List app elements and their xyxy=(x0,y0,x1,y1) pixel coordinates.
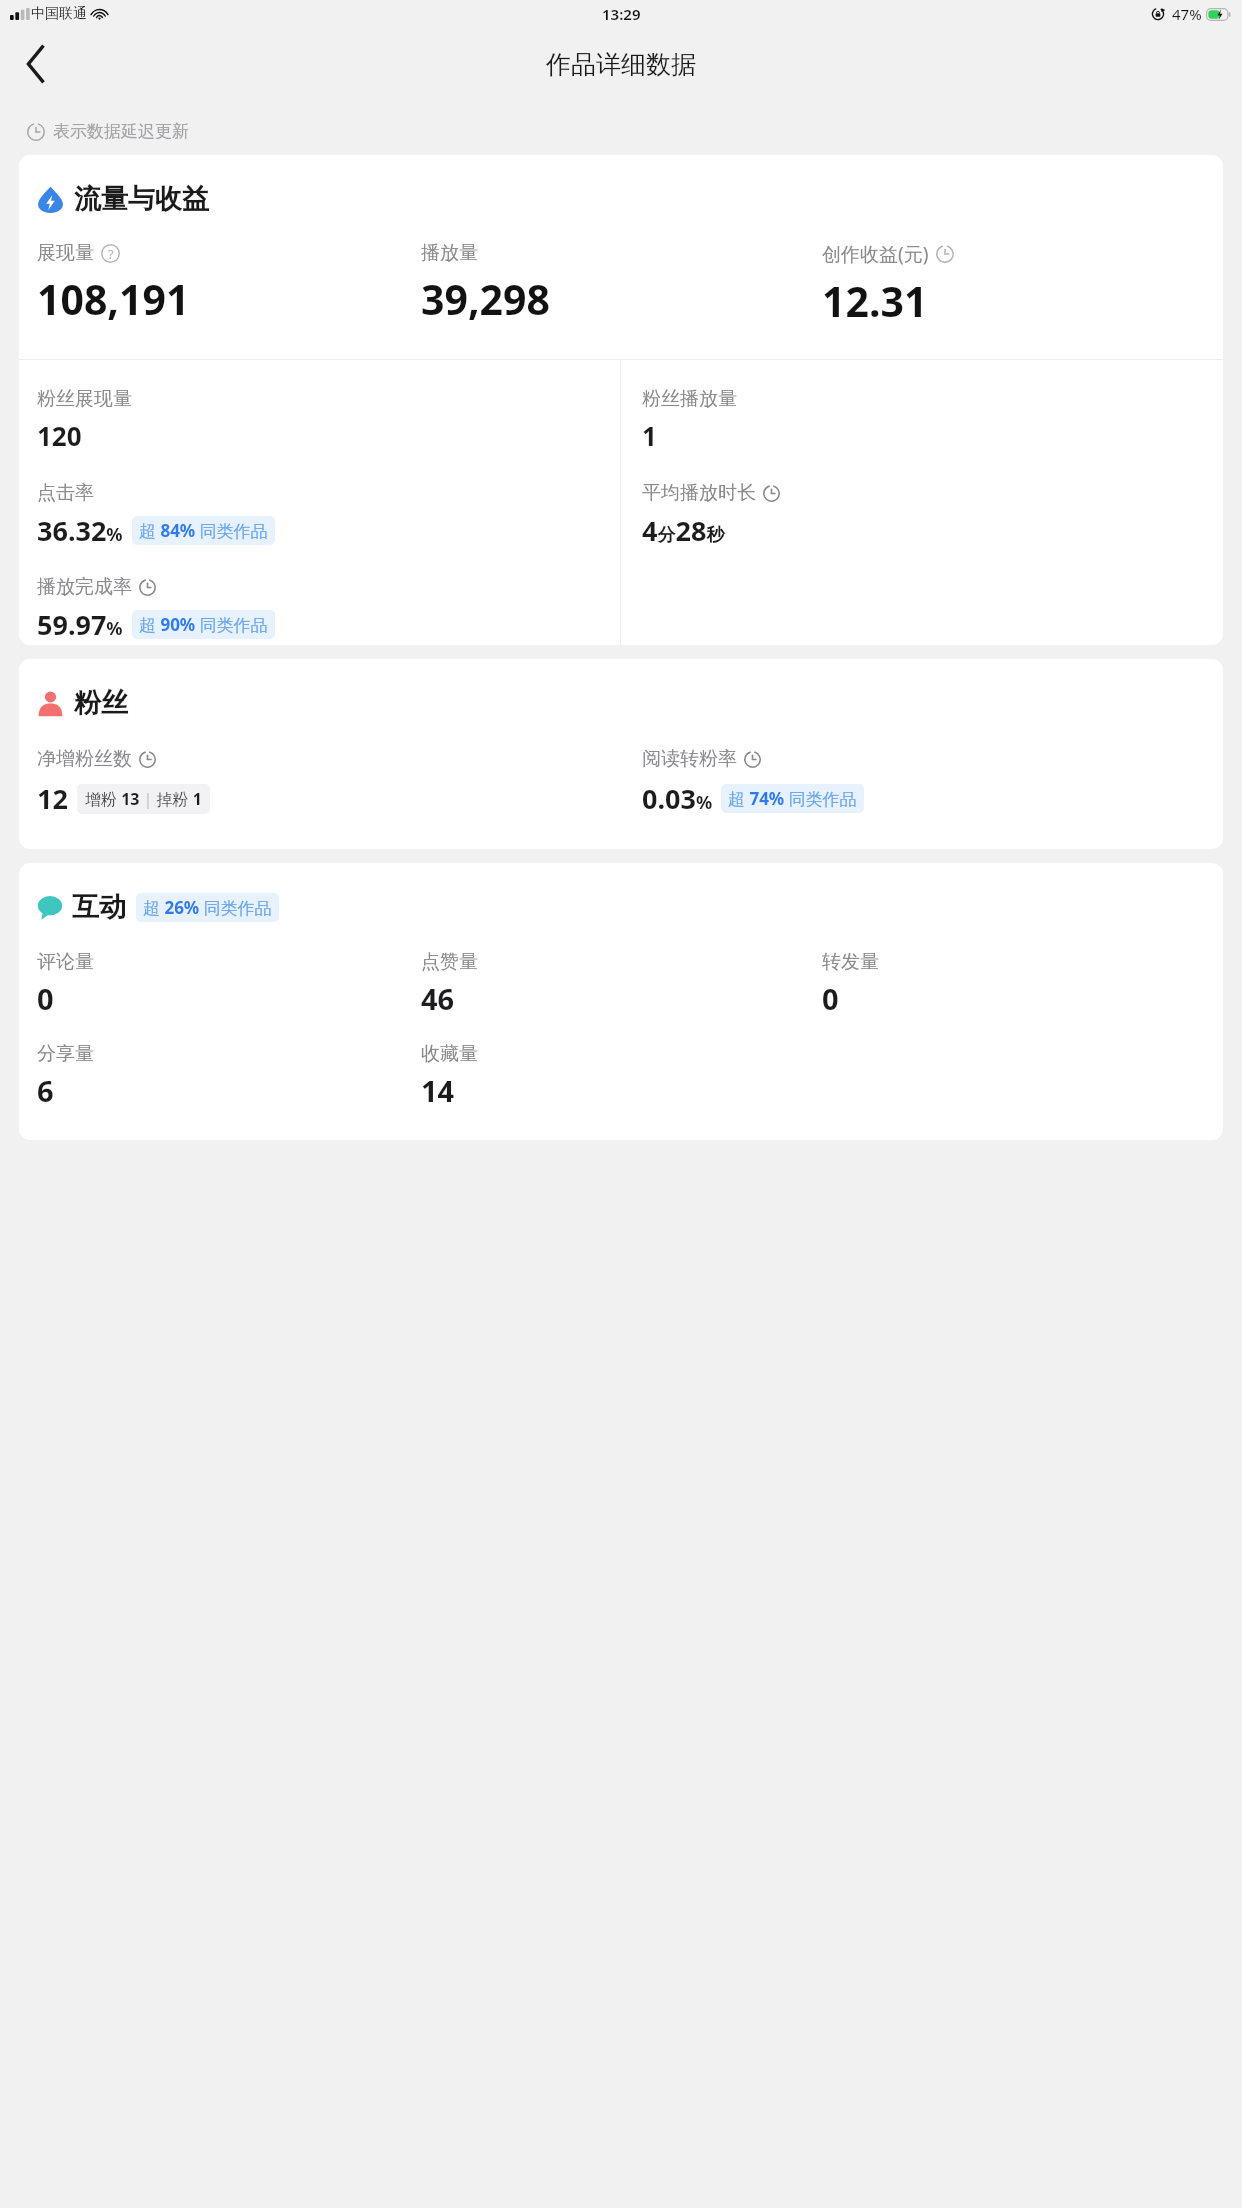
staticText: 120 xyxy=(37,418,82,453)
staticText: 47% xyxy=(1172,4,1202,24)
staticText: 点击率 xyxy=(37,481,94,505)
staticText: 创作收益(元) xyxy=(822,241,929,267)
staticText: ? xyxy=(108,245,114,263)
staticText: 中国联通 xyxy=(31,5,87,23)
staticText: 0 xyxy=(822,979,839,1018)
staticText: 展现量 xyxy=(37,241,94,265)
staticText: 6 xyxy=(37,1071,54,1110)
staticText: 14 xyxy=(421,1071,455,1110)
staticText: 46 xyxy=(421,979,455,1018)
staticText: 超 26% 同类作品 xyxy=(143,896,272,919)
button[interactable]: 流量与收益 xyxy=(19,155,1223,645)
staticText: 表示数据延迟更新 xyxy=(53,121,189,142)
staticText: 互动 xyxy=(72,890,126,924)
button[interactable]: 互动 xyxy=(19,863,1223,1140)
staticText: 评论量 xyxy=(37,950,94,974)
staticText: 播放完成率 xyxy=(37,575,132,599)
staticText: 粉丝播放量 xyxy=(642,387,737,411)
staticText: 收藏量 xyxy=(421,1042,478,1066)
staticText: 39,298 xyxy=(421,271,550,327)
staticText: 点赞量 xyxy=(421,950,478,974)
staticText: 阅读转粉率 xyxy=(642,747,737,771)
staticText: 0.03% xyxy=(642,780,713,817)
staticText: 0 xyxy=(37,979,54,1018)
staticText: 4分28秒 xyxy=(642,512,725,549)
staticText: 超 90% 同类作品 xyxy=(139,613,268,636)
staticText: 粉丝展现量 xyxy=(37,387,132,411)
staticText: 增粉 13 | 掉粉 1 xyxy=(85,788,202,810)
staticText: 12.31 xyxy=(822,273,928,329)
staticText: 净增粉丝数 xyxy=(37,747,132,771)
staticText: 108,191 xyxy=(37,271,190,327)
staticText: 平均播放时长 xyxy=(642,481,756,505)
staticText: 13:29 xyxy=(602,4,641,24)
button[interactable]: Back xyxy=(8,36,64,92)
staticText: 1 xyxy=(642,418,657,453)
staticText: 粉丝 xyxy=(74,686,128,720)
button[interactable]: 粉丝 xyxy=(19,659,1223,849)
staticText: 超 74% 同类作品 xyxy=(728,787,857,810)
staticText: 流量与收益 xyxy=(74,182,209,216)
staticText: 分享量 xyxy=(37,1042,94,1066)
staticText: 12 xyxy=(37,780,68,817)
staticText: 36.32% xyxy=(37,512,123,549)
staticText: 播放量 xyxy=(421,241,478,265)
staticText: 转发量 xyxy=(822,950,879,974)
staticText: 59.97% xyxy=(37,606,123,643)
staticText: 作品详细数据 xyxy=(546,49,696,80)
staticText: 超 84% 同类作品 xyxy=(139,519,268,542)
